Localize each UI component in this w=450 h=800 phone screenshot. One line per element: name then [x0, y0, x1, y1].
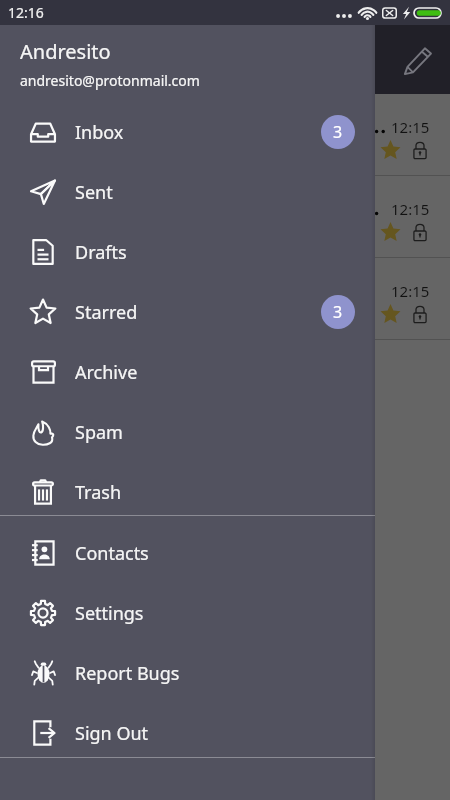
button[interactable]: Starred — [0, 282, 375, 342]
staticText: 12:15 — [391, 199, 430, 219]
button[interactable]: Settings — [0, 583, 375, 643]
staticText: 12:16 — [8, 3, 44, 22]
button[interactable]: 12:15 — [0, 94, 450, 176]
staticText: 3 — [333, 121, 343, 143]
staticText: Archive — [75, 360, 138, 385]
staticText: 12:15 — [391, 281, 430, 301]
button[interactable]: Archive — [0, 342, 375, 402]
staticText: 12:15 — [391, 117, 430, 137]
staticText: Andresito — [20, 38, 111, 65]
staticText: Drafts — [75, 240, 127, 265]
staticText: Starred — [75, 300, 138, 325]
staticText: Settings — [75, 601, 144, 626]
button[interactable]: Report Bugs — [0, 643, 375, 703]
button[interactable]: Sign Out — [0, 703, 375, 763]
staticText: Spam — [75, 420, 123, 445]
button[interactable]: Inbox — [0, 102, 375, 162]
staticText: Sign Out — [75, 721, 149, 746]
staticText: 3 — [333, 301, 343, 323]
button[interactable]: Compose — [394, 36, 442, 84]
button[interactable]: Drafts — [0, 222, 375, 282]
button[interactable]: Spam — [0, 402, 375, 462]
button[interactable]: Trash — [0, 462, 375, 522]
button[interactable]: Contacts — [0, 523, 375, 583]
staticText: Inbox — [75, 120, 124, 145]
staticText: Report Bugs — [75, 661, 180, 686]
button[interactable]: 12:15 — [0, 258, 450, 340]
staticText: Sent — [75, 180, 113, 205]
staticText: andresito@protonmail.com — [20, 71, 200, 90]
button[interactable]: Sent — [0, 162, 375, 222]
button[interactable]: 12:15 — [0, 176, 450, 258]
staticText: Trash — [75, 480, 122, 505]
staticText: Contacts — [75, 541, 149, 566]
